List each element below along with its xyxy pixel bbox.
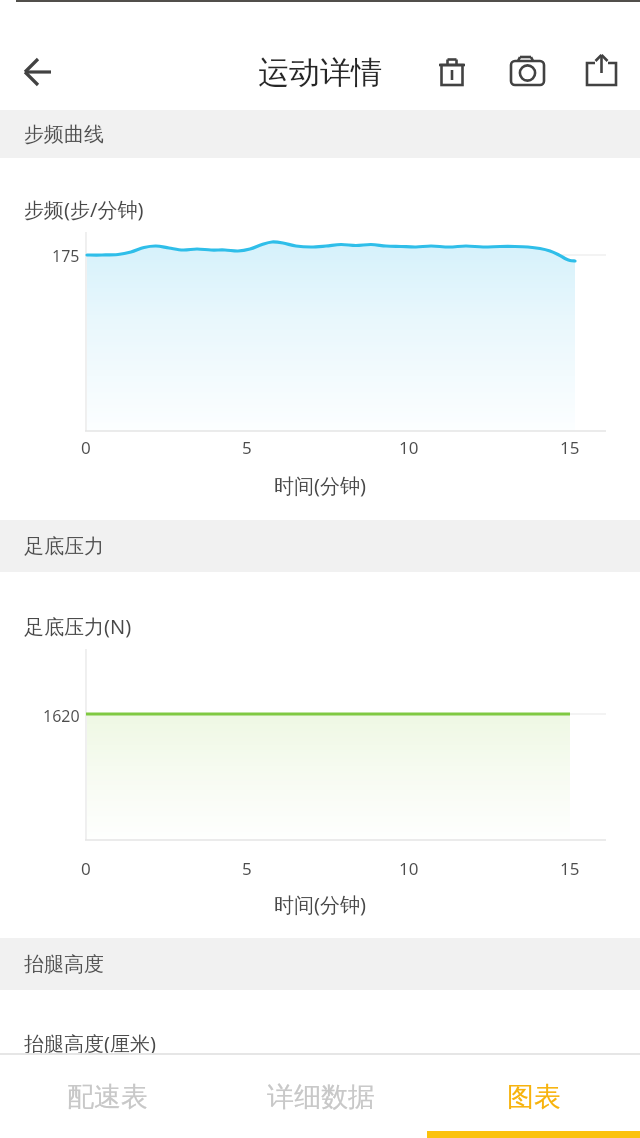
staticText: 15 bbox=[560, 436, 580, 459]
staticText: 时间(分钟) bbox=[274, 472, 366, 499]
staticText: 详细数据 bbox=[267, 1080, 375, 1114]
staticText: 足底压力 bbox=[24, 534, 104, 559]
staticText: 抬腿高度 bbox=[24, 952, 104, 977]
staticText: 运动详情 bbox=[258, 53, 382, 92]
staticText: 10 bbox=[399, 436, 419, 459]
button[interactable] bbox=[503, 52, 551, 92]
staticText: 步频(步/分钟) bbox=[24, 196, 144, 223]
staticText: 0 bbox=[81, 436, 91, 459]
staticText: 时间(分钟) bbox=[274, 891, 366, 918]
button[interactable]: 配速表 bbox=[0, 1055, 214, 1138]
staticText: 175 bbox=[52, 245, 80, 267]
button[interactable] bbox=[16, 52, 60, 92]
staticText: 足底压力(N) bbox=[24, 613, 132, 640]
staticText: 5 bbox=[242, 436, 252, 459]
staticText: 10 bbox=[399, 857, 419, 880]
staticText: 15 bbox=[560, 857, 580, 880]
staticText: 图表 bbox=[507, 1080, 561, 1114]
staticText: 抬腿高度(厘米) bbox=[24, 1030, 156, 1057]
staticText: 步频曲线 bbox=[24, 122, 104, 147]
staticText: 1620 bbox=[43, 705, 80, 727]
button[interactable]: 详细数据 bbox=[214, 1055, 427, 1138]
button[interactable]: 图表 bbox=[427, 1055, 640, 1138]
button[interactable] bbox=[580, 52, 624, 92]
staticText: 配速表 bbox=[67, 1080, 148, 1114]
button[interactable] bbox=[433, 52, 473, 92]
staticText: 5 bbox=[242, 857, 252, 880]
staticText: 0 bbox=[81, 857, 91, 880]
